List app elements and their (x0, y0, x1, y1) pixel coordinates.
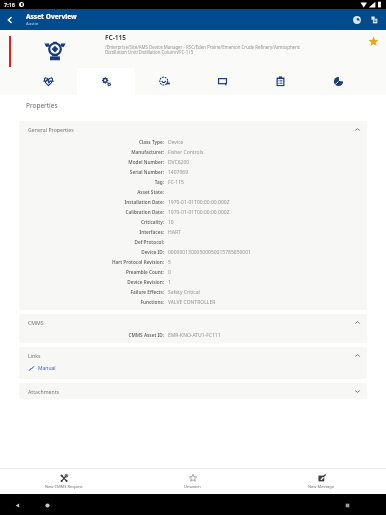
button[interactable]: Documents (365, 11, 382, 28)
staticText: CMMS Asset ID: (128, 332, 164, 338)
staticText: Hart Protocol Revision: (111, 259, 164, 265)
staticText: Fisher Controls (168, 149, 204, 156)
staticText: DVC6200 (168, 159, 190, 166)
button[interactable]: Attachments (19, 383, 367, 399)
staticText: 00000013000500050015785850001 (168, 249, 251, 256)
staticText: Functions: (140, 299, 164, 305)
button[interactable]: Refresh (348, 11, 365, 28)
staticText: Device ID: (141, 249, 164, 255)
button[interactable]: New CMMS Request (0, 469, 128, 494)
staticText: Links (28, 352, 354, 359)
staticText: Installation Date: (124, 199, 164, 205)
staticText: New Message (308, 484, 335, 489)
staticText: 0 (168, 269, 171, 276)
button[interactable]: Back (0, 10, 20, 30)
button[interactable]: Reports (309, 68, 367, 95)
staticText: 5 (168, 259, 171, 266)
button[interactable]: Checklist (251, 68, 309, 95)
staticText: Class Type: (138, 139, 164, 145)
staticText: FC-115 (168, 179, 184, 186)
staticText: Model Number: (128, 159, 164, 165)
staticText: 1 (168, 279, 171, 286)
staticText: Interfaces: (139, 229, 164, 235)
staticText: Safety Critical (168, 289, 200, 296)
staticText: Asset State: (137, 189, 164, 195)
staticText: Manufacturer: (131, 149, 164, 155)
button[interactable]: Favorite (366, 34, 380, 48)
button[interactable]: Links (19, 347, 367, 363)
button[interactable]: Health (19, 68, 77, 95)
staticText: 1970-01-01T00:00:00.000Z (168, 199, 230, 206)
staticText: Criticality: (140, 219, 164, 225)
staticText: 10 (168, 219, 174, 226)
staticText: Tag: (154, 179, 164, 185)
staticText: EMR-KNO-ATU1-FC111 (168, 332, 221, 339)
staticText: 1407069 (168, 169, 189, 176)
staticText: Asset Overview (26, 12, 77, 21)
staticText: Failure Effects: (130, 289, 164, 295)
staticText: Attachments (28, 388, 354, 395)
staticText: VALVE CONTROLLER (168, 299, 216, 306)
staticText: New CMMS Request (45, 484, 83, 489)
button[interactable]: Properties (77, 68, 135, 95)
button[interactable]: Back (9, 497, 25, 513)
staticText: Def Protocol: (134, 239, 164, 245)
button[interactable]: Unwatch (128, 469, 257, 494)
button[interactable]: Recents (339, 497, 355, 513)
button[interactable]: Manual (28, 365, 56, 372)
staticText: Properties (26, 101, 58, 110)
staticText: Unwatch (184, 484, 201, 489)
staticText: FC-115 (105, 33, 126, 42)
button[interactable]: New Message (257, 469, 386, 494)
staticText: Device (168, 139, 184, 146)
staticText: Calibration Date: (125, 209, 164, 215)
staticText: Preamble Count: (125, 269, 164, 275)
button[interactable]: History (135, 68, 193, 95)
button[interactable]: CMMS (19, 314, 367, 330)
staticText: Serial Number: (129, 169, 164, 175)
staticText: Device Revision: (127, 279, 164, 285)
staticText: /Enterprise/Site/AMS Device Manager - RS… (105, 44, 301, 56)
staticText: 7:16 (4, 1, 15, 8)
staticText: CMMS (28, 319, 354, 326)
staticText: Manual (38, 365, 56, 372)
staticText: 1970-01-01T00:00:00.000Z (168, 209, 230, 216)
button[interactable]: General Properties (19, 121, 367, 137)
button[interactable]: Home (39, 497, 55, 513)
staticText: HART (168, 229, 181, 236)
button[interactable]: Messages (193, 68, 251, 95)
staticText: General Properties (28, 126, 354, 133)
staticText: Austin (26, 21, 39, 27)
